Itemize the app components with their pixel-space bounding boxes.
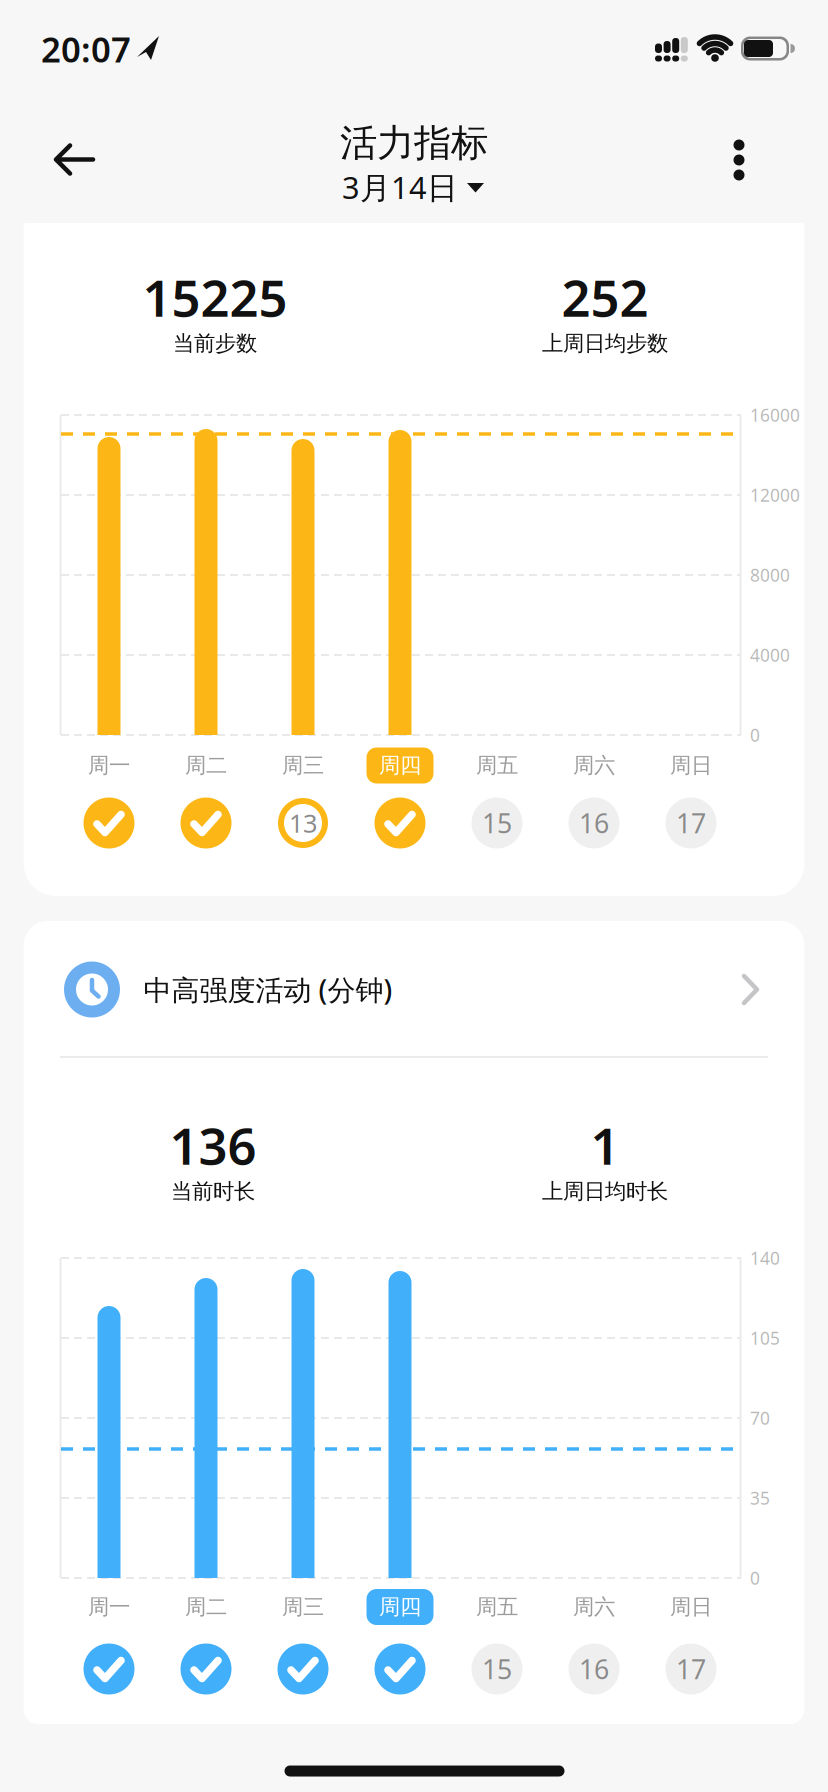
- button[interactable]: 周六: [565, 794, 623, 852]
- button[interactable]: 返回: [30, 138, 115, 181]
- button[interactable]: 周四: [371, 794, 429, 852]
- button[interactable]: 周日: [662, 1640, 720, 1698]
- staticText: 当前时长: [171, 1178, 255, 1205]
- staticText: 周六: [573, 1594, 615, 1620]
- staticText: 16: [579, 1651, 609, 1687]
- staticText: 17: [676, 1651, 706, 1687]
- button[interactable]: 周四: [366, 1589, 433, 1625]
- staticText: 周四: [379, 752, 421, 779]
- staticText: 中高强度活动 (分钟): [143, 971, 392, 1008]
- staticText: 4000: [750, 643, 790, 666]
- staticText: 17: [676, 805, 706, 841]
- button[interactable]: 选择日期: [339, 167, 489, 207]
- staticText: 活力指标: [340, 120, 488, 166]
- button[interactable]: 周二: [177, 1640, 235, 1698]
- staticText: 35: [750, 1486, 770, 1509]
- button[interactable]: 周三: [274, 1640, 332, 1698]
- staticText: 252: [561, 263, 648, 331]
- staticText: 周三: [282, 1594, 324, 1620]
- staticText: 8000: [750, 563, 790, 586]
- staticText: 周二: [185, 1594, 227, 1620]
- button[interactable]: 中高强度活动 (分钟): [23, 923, 804, 1056]
- staticText: 16000: [750, 403, 800, 426]
- button[interactable]: 周一: [80, 794, 138, 852]
- staticText: 周三: [282, 752, 324, 779]
- staticText: 周五: [476, 1594, 518, 1620]
- staticText: 上周日均时长: [542, 1178, 668, 1205]
- staticText: 周一: [88, 1594, 130, 1620]
- staticText: 周一: [88, 752, 130, 779]
- staticText: 周日: [670, 1594, 712, 1620]
- staticText: 16: [579, 805, 609, 841]
- staticText: 20:07: [41, 26, 131, 72]
- staticText: 15225: [142, 263, 287, 331]
- staticText: 周日: [670, 752, 712, 779]
- button[interactable]: 周日: [662, 794, 720, 852]
- staticText: 70: [750, 1406, 770, 1429]
- staticText: 上周日均步数: [542, 330, 668, 357]
- staticText: 15: [482, 1651, 512, 1687]
- button[interactable]: 周四: [371, 1640, 429, 1698]
- staticText: 15: [482, 805, 512, 841]
- staticText: 当前步数: [173, 330, 257, 357]
- staticText: 周四: [379, 1594, 421, 1620]
- staticText: 1: [590, 1111, 619, 1179]
- staticText: 周五: [476, 752, 518, 779]
- button[interactable]: 更多: [714, 135, 764, 185]
- button[interactable]: 周五: [468, 794, 526, 852]
- staticText: 136: [169, 1111, 256, 1179]
- staticText: 周六: [573, 752, 615, 779]
- staticText: 13: [289, 806, 317, 840]
- button[interactable]: 周四: [366, 747, 433, 783]
- button[interactable]: 周五: [468, 1640, 526, 1698]
- staticText: 0: [750, 1566, 760, 1589]
- button[interactable]: 周三: [274, 794, 332, 852]
- staticText: 105: [750, 1326, 780, 1349]
- staticText: 0: [750, 723, 760, 746]
- button[interactable]: 周六: [565, 1640, 623, 1698]
- staticText: 140: [750, 1246, 780, 1269]
- staticText: 3月14日: [342, 167, 458, 207]
- button[interactable]: 周一: [80, 1640, 138, 1698]
- staticText: 12000: [750, 483, 800, 506]
- staticText: 周二: [185, 752, 227, 779]
- button[interactable]: 周二: [177, 794, 235, 852]
